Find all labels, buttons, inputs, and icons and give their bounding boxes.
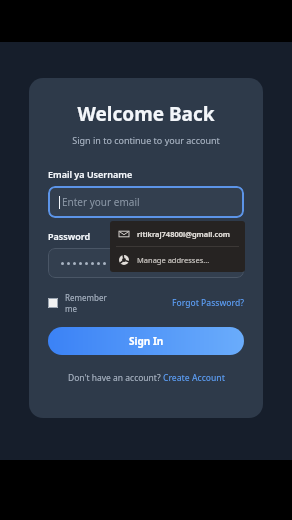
button[interactable]: Forgot Password? [172,297,244,309]
staticText: Manage addresses... [137,255,210,265]
staticText: Welcome Back [29,101,263,127]
button[interactable]: Manage addresses [110,247,245,272]
other: Manage addresses [119,255,129,265]
button[interactable]: Email [110,221,245,246]
button[interactable]: Enter your email [48,186,244,218]
staticText: Create Account [163,372,225,384]
staticText: Email ya Username [48,168,133,180]
staticText: Password [48,230,91,242]
staticText: ritikraj74800i@gmail.com [137,229,231,239]
staticText: Don't have an account? [68,372,163,384]
other: Email [119,229,129,239]
staticText: me [65,303,77,314]
staticText: Forgot Password? [172,297,244,309]
staticText: Enter your email [62,195,140,209]
button[interactable]: Remember [48,292,107,314]
staticText: Remember [65,292,107,303]
staticText: Sign In [129,334,164,348]
staticText: Sign in to continue to your account [29,134,263,146]
button[interactable] [48,248,244,278]
button[interactable]: Create Account [163,372,225,384]
button[interactable]: Sign In [48,327,244,355]
